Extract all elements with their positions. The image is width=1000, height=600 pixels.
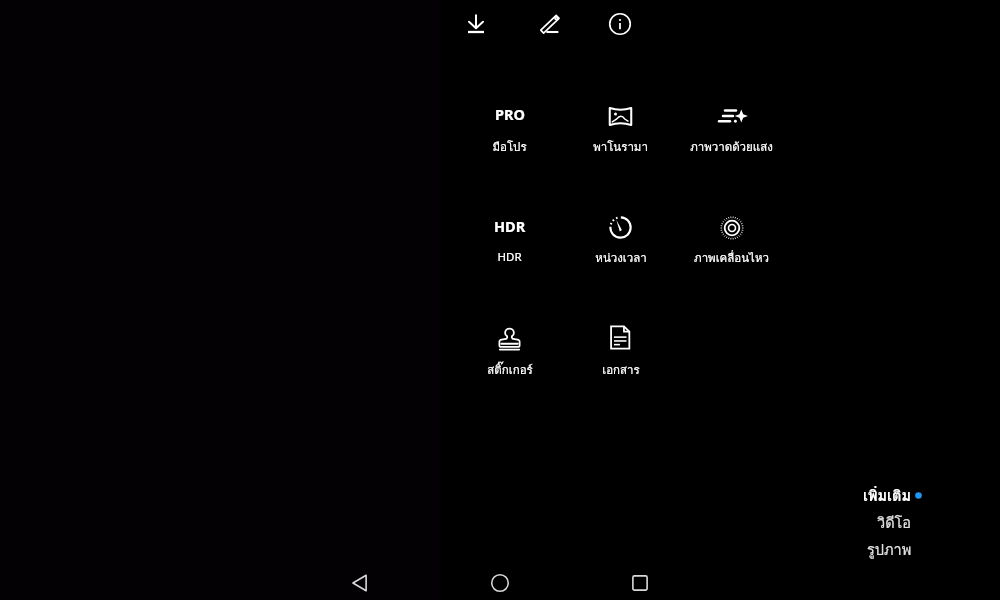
staticText: พาโนรามา bbox=[593, 138, 648, 156]
staticText: ภาพเคลื่อนไหว bbox=[694, 249, 769, 267]
button[interactable]: หน่วงเวลา bbox=[568, 207, 673, 269]
button[interactable]: เอกสาร bbox=[568, 319, 673, 381]
staticText: เพิ่มเติม bbox=[863, 484, 912, 507]
button[interactable]: ภาพเคลื่อนไหว bbox=[679, 207, 784, 269]
staticText: HDR bbox=[494, 216, 526, 236]
button[interactable]: Back bbox=[340, 563, 380, 600]
button[interactable]: Download bbox=[455, 3, 497, 45]
staticText: เอกสาร bbox=[602, 361, 640, 379]
button[interactable]: รูปภาพ bbox=[802, 537, 912, 561]
button[interactable]: Home bbox=[480, 563, 520, 600]
button[interactable]: HDR bbox=[457, 207, 562, 269]
button[interactable]: พาโนรามา bbox=[568, 96, 673, 158]
button[interactable]: วิดีโอ bbox=[802, 510, 912, 534]
staticText: วิดีโอ bbox=[877, 511, 912, 534]
button[interactable]: เพิ่มเติม bbox=[802, 483, 912, 507]
staticText: สติ๊กเกอร์ bbox=[487, 361, 533, 379]
staticText: มือโปร bbox=[492, 138, 527, 156]
staticText: HDR bbox=[497, 249, 522, 265]
button[interactable]: สติ๊กเกอร์ bbox=[457, 319, 562, 381]
staticText: PRO bbox=[495, 104, 525, 124]
button[interactable]: Recents bbox=[620, 563, 660, 600]
button[interactable]: Edit bbox=[528, 3, 570, 45]
staticText: ภาพวาดด้วยแสง bbox=[690, 138, 773, 156]
staticText: หน่วงเวลา bbox=[595, 249, 647, 267]
staticText: รูปภาพ bbox=[867, 538, 912, 561]
button[interactable]: ภาพวาดด้วยแสง bbox=[679, 96, 784, 158]
button[interactable]: Info bbox=[599, 3, 641, 45]
button[interactable]: PRO bbox=[457, 96, 562, 158]
